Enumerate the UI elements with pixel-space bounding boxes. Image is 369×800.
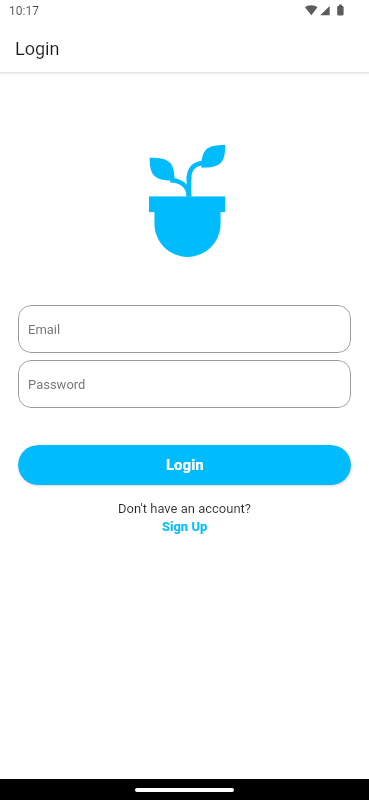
staticText: Login — [166, 456, 204, 474]
button[interactable]: Login — [18, 445, 351, 485]
button[interactable]: Email — [18, 305, 351, 353]
staticText: 10:17 — [9, 4, 39, 18]
button[interactable]: Sign Up — [156, 518, 214, 535]
staticText: Password — [28, 377, 86, 392]
other: Home — [135, 788, 234, 792]
staticText: Email — [28, 322, 61, 337]
staticText: Don't have an account? — [0, 501, 369, 516]
button[interactable]: Password — [18, 360, 351, 408]
staticText: Login — [15, 38, 60, 59]
